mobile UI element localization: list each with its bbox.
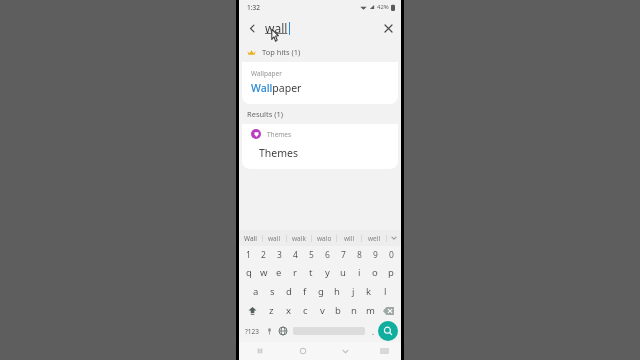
staticText: y: [325, 266, 330, 279]
staticText: h: [334, 285, 340, 298]
staticText: s: [270, 285, 275, 298]
staticText: x: [286, 304, 292, 317]
button[interactable]: Keyboard layout: [367, 342, 401, 360]
staticText: 0: [389, 249, 394, 261]
staticText: 6: [325, 249, 330, 261]
button[interactable]: r: [287, 263, 303, 282]
staticText: ?123: [245, 327, 259, 336]
button[interactable]: 0: [383, 246, 399, 263]
button[interactable]: 2: [256, 246, 271, 263]
button[interactable]: j: [345, 282, 361, 301]
button[interactable]: Voice input: [262, 320, 276, 342]
button[interactable]: Clear search: [379, 19, 397, 37]
button[interactable]: Search: [378, 321, 398, 341]
staticText: q: [246, 266, 252, 279]
button[interactable]: h: [329, 282, 345, 301]
button[interactable]: i: [351, 263, 367, 282]
staticText: 8: [357, 249, 362, 261]
staticText: v: [320, 304, 325, 317]
button[interactable]: Wall: [239, 230, 262, 246]
staticText: l: [384, 285, 387, 298]
staticText: m: [366, 304, 375, 317]
staticText: g: [318, 285, 324, 298]
button[interactable]: p: [383, 263, 399, 282]
button[interactable]: 9: [367, 246, 383, 263]
button[interactable]: Change language: [276, 320, 290, 342]
button[interactable]: n: [346, 301, 362, 320]
button[interactable]: 3: [271, 246, 287, 263]
button[interactable]: s: [264, 282, 281, 301]
button[interactable]: 8: [351, 246, 367, 263]
staticText: Top hits (1): [262, 47, 301, 57]
button[interactable]: 7: [335, 246, 351, 263]
staticText: 5: [309, 249, 314, 261]
button[interactable]: Wallpaper: [242, 62, 398, 104]
staticText: walo: [317, 234, 332, 243]
button[interactable]: 6: [319, 246, 335, 263]
button[interactable]: wall: [263, 230, 286, 246]
button[interactable]: Recents: [239, 342, 281, 360]
staticText: e: [276, 266, 282, 279]
button[interactable]: will: [337, 230, 361, 246]
staticText: will: [344, 234, 355, 243]
staticText: wall: [265, 20, 288, 36]
button[interactable]: Backspace: [378, 301, 399, 320]
button[interactable]: v: [314, 301, 330, 320]
staticText: Results (1): [247, 109, 284, 119]
button[interactable]: m: [362, 301, 378, 320]
button[interactable]: walo: [312, 230, 336, 246]
button[interactable]: t: [303, 263, 319, 282]
button[interactable]: Back: [243, 19, 261, 37]
button[interactable]: d: [281, 282, 297, 301]
staticText: 1: [246, 249, 251, 261]
staticText: j: [352, 285, 355, 298]
button[interactable]: f: [297, 282, 313, 301]
staticText: 2: [261, 249, 266, 261]
staticText: w: [260, 266, 268, 279]
staticText: k: [366, 285, 372, 298]
staticText: Themes: [267, 130, 292, 139]
button[interactable]: z: [263, 301, 280, 320]
button[interactable]: Expand suggestions: [387, 230, 401, 246]
staticText: i: [358, 266, 361, 279]
button[interactable]: c: [297, 301, 314, 320]
staticText: d: [286, 285, 292, 298]
button[interactable]: .: [368, 320, 378, 342]
staticText: .: [372, 326, 375, 337]
button[interactable]: a: [247, 282, 264, 301]
staticText: well: [368, 234, 381, 243]
button[interactable]: x: [280, 301, 297, 320]
button[interactable]: 5: [303, 246, 319, 263]
button[interactable]: well: [362, 230, 386, 246]
button[interactable]: u: [335, 263, 351, 282]
button[interactable]: 1: [241, 246, 256, 263]
staticText: r: [293, 266, 297, 279]
staticText: 7: [341, 249, 346, 261]
button[interactable]: y: [319, 263, 335, 282]
staticText: 1:32: [247, 3, 260, 12]
button[interactable]: o: [367, 263, 383, 282]
staticText: 42%: [377, 3, 389, 11]
button[interactable]: Hide keyboard: [324, 342, 367, 360]
button[interactable]: b: [330, 301, 346, 320]
button[interactable]: walk: [287, 230, 311, 246]
button[interactable]: ?123: [242, 320, 262, 342]
staticText: f: [303, 285, 307, 298]
button[interactable]: q: [241, 263, 256, 282]
button[interactable]: Home: [281, 342, 324, 360]
staticText: n: [351, 304, 357, 317]
button[interactable]: e: [271, 263, 287, 282]
button[interactable]: w: [256, 263, 271, 282]
button[interactable]: g: [313, 282, 329, 301]
button[interactable]: 4: [287, 246, 303, 263]
staticText: Wall: [244, 234, 257, 243]
button[interactable]: l: [377, 282, 393, 301]
button[interactable]: Shift: [241, 301, 263, 320]
staticText: u: [340, 266, 346, 279]
staticText: z: [269, 304, 274, 317]
staticText: 4: [293, 249, 298, 261]
button[interactable]: k: [361, 282, 377, 301]
button[interactable]: Themes: [242, 124, 398, 169]
staticText: Wallpaper: [251, 69, 282, 78]
